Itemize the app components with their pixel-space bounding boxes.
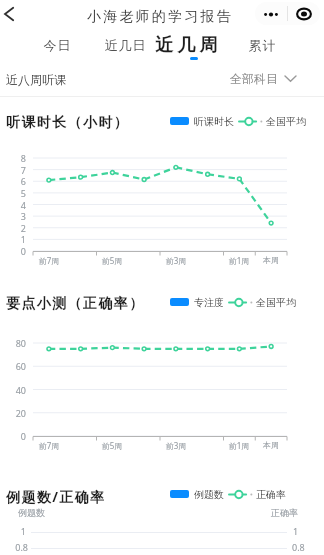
- staticText: 今日: [43, 37, 71, 53]
- staticText: 1: [0, 233, 26, 245]
- button[interactable]: Back: [0, 0, 26, 28]
- staticText: 全部科目: [230, 71, 278, 86]
- staticText: 近几周: [155, 34, 222, 57]
- staticText: 例题数/正确率: [6, 487, 106, 506]
- staticText: 前5周: [98, 440, 126, 451]
- staticText: 8: [0, 152, 26, 164]
- staticText: 1: [2, 525, 26, 537]
- staticText: 听课时长: [194, 115, 234, 128]
- staticText: 正确率: [256, 488, 286, 501]
- staticText: 要点小测（正确率）: [6, 295, 145, 313]
- staticText: 0: [0, 430, 26, 442]
- staticText: 7: [0, 164, 26, 176]
- staticText: 0.8: [292, 541, 305, 553]
- staticText: 近八周听课: [6, 72, 66, 87]
- staticText: 听课时长（小时）: [6, 114, 130, 132]
- staticText: 本周: [257, 255, 285, 265]
- staticText: 4: [0, 199, 26, 211]
- button[interactable]: 累计: [246, 36, 278, 54]
- button[interactable]: 近几日: [102, 36, 148, 54]
- staticText: 20: [0, 407, 26, 419]
- staticText: 近几日: [104, 37, 146, 53]
- staticText: 5: [0, 187, 26, 199]
- staticText: 正确率: [271, 507, 298, 518]
- staticText: 80: [0, 337, 26, 349]
- staticText: 6: [0, 175, 26, 187]
- staticText: 前1周: [225, 440, 253, 451]
- staticText: 60: [0, 360, 26, 372]
- staticText: 0.8: [2, 541, 28, 553]
- staticText: 前5周: [98, 255, 126, 266]
- staticText: 前7周: [35, 255, 63, 266]
- staticText: 小海老师的学习报告: [87, 8, 233, 26]
- staticText: 全国平均: [256, 296, 296, 309]
- button[interactable]: More options: [255, 2, 287, 25]
- staticText: 累计: [248, 37, 276, 53]
- staticText: 前1周: [225, 255, 253, 266]
- staticText: 3: [0, 210, 26, 222]
- button[interactable]: 近几周: [153, 33, 224, 58]
- button[interactable]: 今日: [41, 36, 73, 54]
- button[interactable]: 全部科目: [230, 68, 296, 88]
- staticText: 本周: [257, 440, 285, 450]
- button[interactable]: Close: [288, 2, 320, 25]
- staticText: 全国平均: [266, 115, 306, 128]
- staticText: 例题数: [194, 488, 224, 501]
- staticText: 0: [0, 245, 26, 257]
- staticText: 例题数: [18, 507, 45, 518]
- staticText: 前7周: [35, 440, 63, 451]
- staticText: 前3周: [162, 255, 190, 266]
- staticText: 专注度: [194, 296, 224, 309]
- staticText: 1: [293, 525, 299, 537]
- staticText: 前3周: [162, 440, 190, 451]
- staticText: 2: [0, 222, 26, 234]
- staticText: 40: [0, 384, 26, 396]
